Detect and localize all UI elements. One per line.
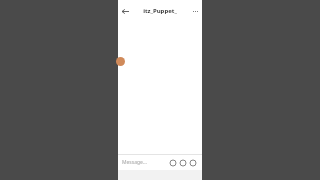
button[interactable]: Action (188, 158, 198, 168)
staticText: Message... (122, 159, 147, 166)
button[interactable]: More options (188, 4, 202, 18)
button[interactable]: Action (168, 158, 178, 168)
button[interactable]: Back (118, 4, 132, 18)
button[interactable]: Action (178, 158, 188, 168)
staticText: itz_Puppet_ (143, 7, 177, 15)
